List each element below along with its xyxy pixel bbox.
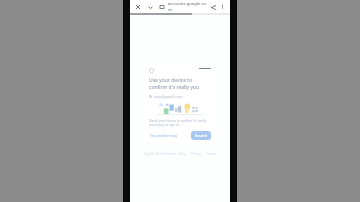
staticText: Try another way (150, 133, 178, 138)
staticText: Check your device to confirm it's really… (149, 119, 211, 127)
staticText: Terms (207, 152, 216, 156)
button[interactable]: Try another way (149, 132, 179, 139)
button[interactable]: Close (133, 2, 143, 12)
staticText: English (United States) (144, 152, 176, 156)
button[interactable]: Share (208, 2, 218, 12)
staticText: accounts.google.com (168, 1, 208, 13)
button[interactable]: Site information (158, 3, 166, 11)
button[interactable]: Help (178, 151, 187, 157)
button[interactable]: Resend (191, 131, 211, 140)
button[interactable]: Privacy (190, 151, 203, 157)
button[interactable]: Expand (145, 2, 155, 12)
button[interactable]: More options (218, 2, 227, 11)
staticText: Resend (195, 133, 207, 138)
button[interactable]: English (United States) (143, 151, 177, 157)
staticText: user@gmail.com (154, 94, 183, 99)
staticText: confirm it's really you (149, 84, 200, 91)
staticText: Help (179, 152, 186, 156)
button[interactable]: Terms (206, 151, 217, 157)
staticText: Privacy (191, 152, 202, 156)
staticText: Use your device to (149, 77, 193, 84)
